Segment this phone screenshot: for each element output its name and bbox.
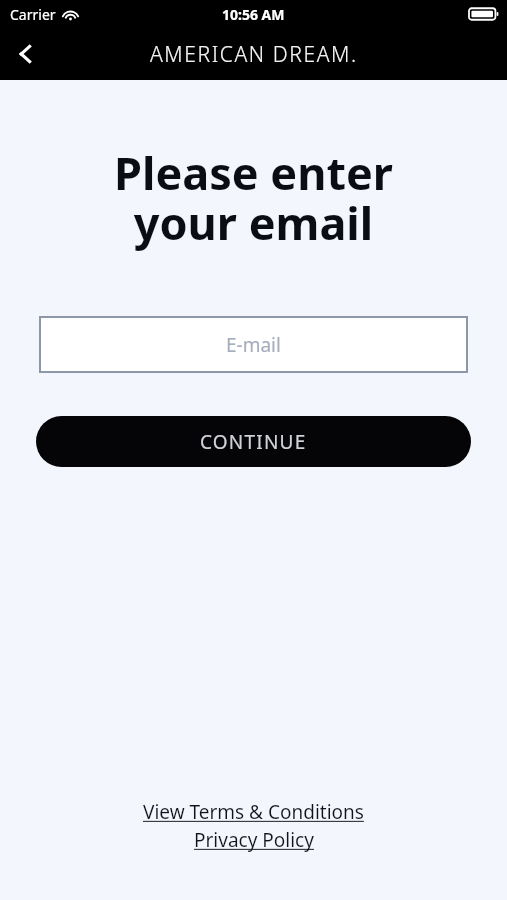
staticText: View Terms & Conditions	[143, 799, 364, 825]
staticText: 10:56 AM	[222, 5, 285, 24]
button[interactable]: CONTINUE	[36, 416, 471, 467]
button[interactable]: Back	[0, 28, 52, 80]
staticText: Privacy Policy	[194, 827, 314, 853]
button[interactable]: View Terms & Conditions	[135, 798, 372, 826]
staticText: Please enter your email	[0, 142, 507, 253]
button[interactable]: Privacy Policy	[186, 826, 322, 854]
staticText: CONTINUE	[200, 429, 307, 455]
button[interactable]: E-mail	[39, 316, 468, 373]
staticText: Carrier	[10, 5, 56, 24]
staticText: AMERICAN DREAM.	[150, 40, 358, 69]
staticText: E-mail	[226, 332, 281, 358]
